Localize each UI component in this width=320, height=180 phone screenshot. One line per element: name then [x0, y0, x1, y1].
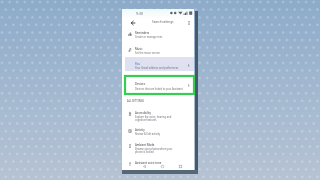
- staticText: Create or manage rem.: [135, 35, 163, 38]
- staticText: Music: [135, 47, 143, 51]
- button[interactable]: Reminders: [122, 30, 194, 40]
- staticText: Your Gmail address and preferences: [135, 66, 179, 69]
- staticText: Search settings: [152, 20, 174, 24]
- button[interactable]: Music: [122, 46, 194, 56]
- staticText: Set the music service: [135, 51, 161, 54]
- staticText: You: [135, 62, 140, 66]
- staticText: Devices that are linked to your Assistan…: [135, 87, 183, 90]
- button[interactable]: Devices: [125, 76, 194, 94]
- button[interactable]: More options: [183, 17, 194, 28]
- staticText: 9:30: [136, 11, 143, 16]
- staticText: Ambient Mode: [135, 143, 155, 147]
- staticText: Accessibility: [135, 111, 151, 115]
- button[interactable]: Back: [140, 162, 149, 171]
- staticText: Activity: [135, 128, 145, 132]
- staticText: Assistant voice tone: [135, 161, 162, 165]
- button[interactable]: Accessibility: [122, 110, 194, 122]
- button[interactable]: Back: [127, 17, 138, 28]
- staticText: Explore the voice, hearing and cognitive…: [135, 115, 172, 121]
- staticText: ALL SETTINGS: [127, 99, 144, 102]
- staticText: Devices: [135, 82, 145, 86]
- button[interactable]: Ambient Mode: [122, 142, 194, 154]
- staticText: Browse your photos when your phone is lo…: [135, 147, 173, 153]
- staticText: Review & Edit activity: [135, 132, 161, 135]
- staticText: Reminders: [135, 31, 150, 35]
- button[interactable]: You: [122, 61, 194, 71]
- button[interactable]: Activity: [122, 127, 194, 137]
- button[interactable]: Home: [158, 162, 167, 171]
- button[interactable]: Recents: [176, 162, 185, 171]
- button[interactable]: Assistant voice tone: [122, 160, 194, 170]
